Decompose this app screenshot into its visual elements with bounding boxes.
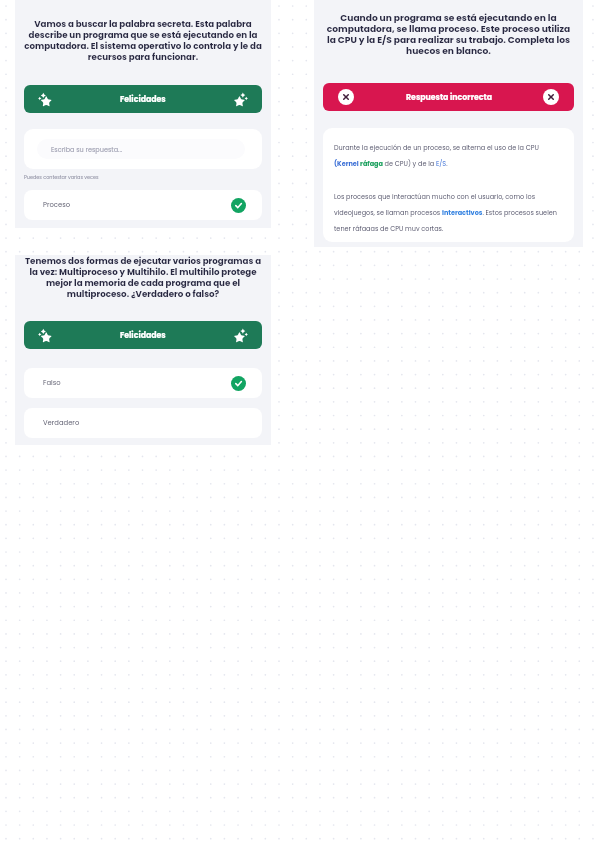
staticText: Cuando un programa se está ejecutando en… <box>323 11 574 57</box>
other: Incorrect <box>543 89 559 105</box>
staticText: Respuesta incorrecta <box>406 92 492 103</box>
button[interactable]: Celebration <box>24 321 262 349</box>
other: Celebration <box>36 91 53 108</box>
button[interactable]: Celebration <box>24 85 262 113</box>
other: Celebration <box>36 327 53 344</box>
staticText: Tenemos dos formas de ejecutar varios pr… <box>24 255 262 300</box>
staticText: Felicidades <box>120 330 166 341</box>
other: Celebration <box>233 91 250 108</box>
staticText: Los procesos que interactúan mucho con e… <box>334 192 563 231</box>
button[interactable]: Escriba su respuesta... <box>24 129 262 169</box>
staticText: Vamos a buscar la palabra secreta. Esta … <box>24 18 262 63</box>
staticText: Proceso <box>43 200 231 210</box>
other: Incorrect <box>338 89 354 105</box>
staticText: Durante la ejecución de un proceso, se a… <box>334 143 563 168</box>
staticText: Escriba su respuesta... <box>51 145 123 154</box>
button[interactable]: Falso <box>24 368 262 398</box>
staticText: Verdadero <box>43 418 246 428</box>
other: Celebration <box>233 327 250 344</box>
staticText: Felicidades <box>120 94 166 105</box>
button[interactable]: Proceso <box>24 190 262 220</box>
staticText: Falso <box>43 378 231 388</box>
button[interactable]: Verdadero <box>24 408 262 438</box>
staticText: Puedes contestar varias veces <box>24 174 99 181</box>
button[interactable]: Incorrect <box>323 83 574 111</box>
